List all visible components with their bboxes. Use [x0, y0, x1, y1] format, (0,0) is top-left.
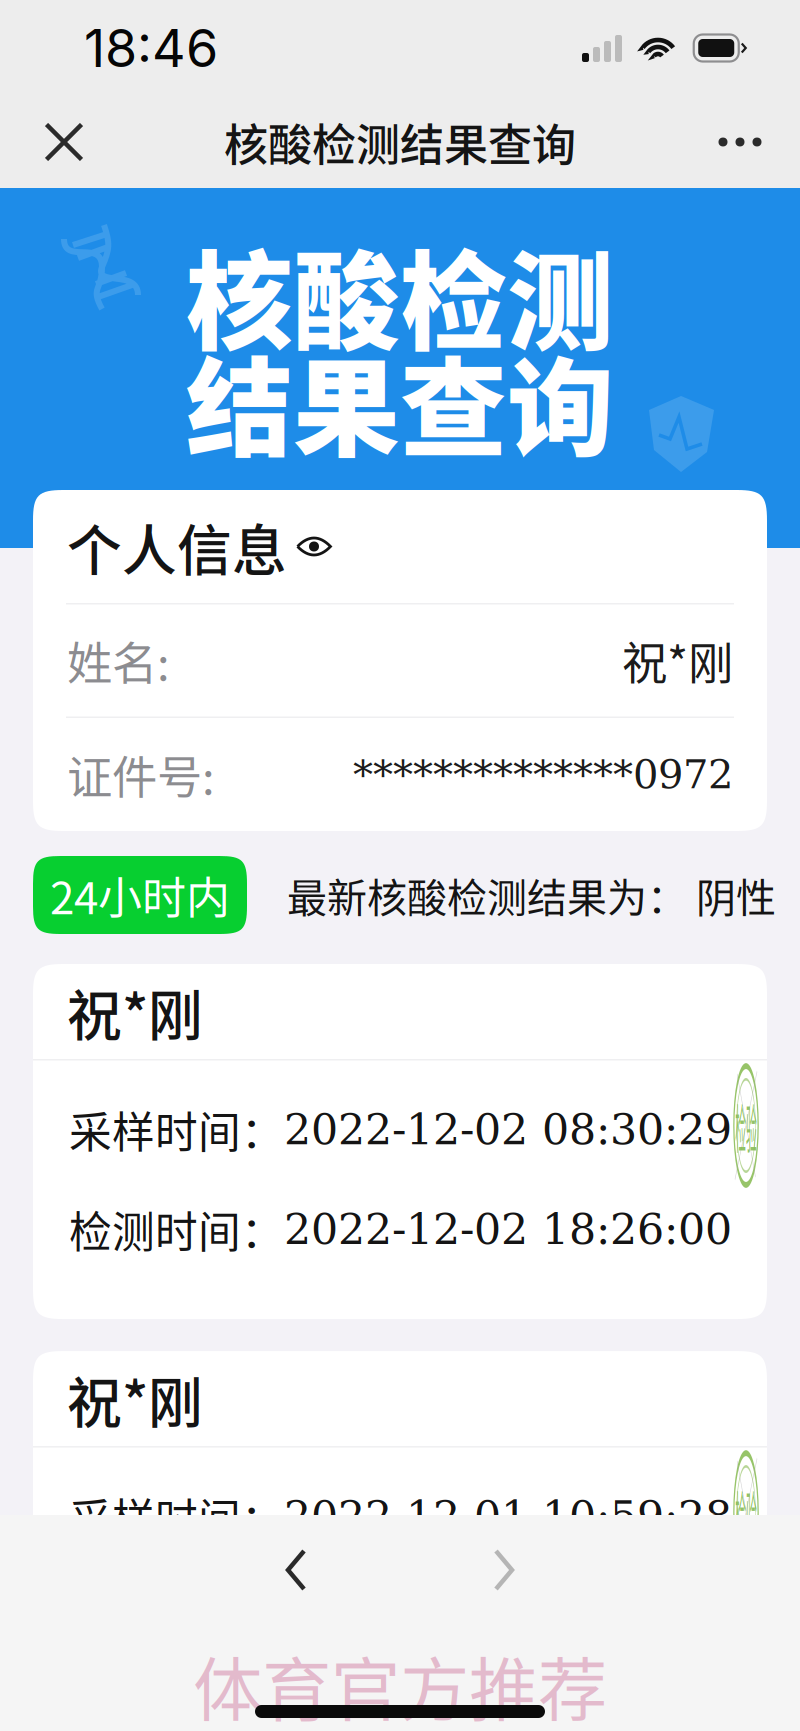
staticText: 最新核酸检测结果为： 阴性: [287, 866, 776, 924]
staticText: 祝*刚: [622, 628, 733, 693]
staticText: 祝*刚: [67, 1359, 203, 1438]
staticText: 体育官方推荐: [193, 1635, 607, 1731]
button[interactable]: Close: [26, 102, 102, 182]
button[interactable]: More: [702, 102, 778, 182]
staticText: 采样时间：: [69, 1486, 284, 1547]
staticText: 结果查询: [186, 323, 614, 478]
staticText: 个人信息: [67, 507, 287, 586]
staticText: 采样时间：: [69, 1098, 284, 1160]
staticText: 2022-12-01 10:59:28: [284, 1492, 732, 1541]
staticText: 检验: [706, 1484, 786, 1541]
staticText: 24小时内: [50, 863, 230, 927]
staticText: 证件号:: [67, 742, 215, 807]
staticText: 祝*刚: [67, 972, 203, 1051]
staticText: 18:46: [84, 16, 218, 79]
staticText: **************0972: [353, 751, 733, 798]
staticText: 姓名:: [67, 628, 170, 693]
staticText: 检验: [706, 1096, 786, 1154]
staticText: 核酸检测: [186, 217, 614, 371]
staticText: 检测时间：: [69, 1198, 284, 1260]
staticText: 核酸检测结果查询: [224, 110, 576, 174]
staticText: 2022-12-02 18:26:00: [284, 1204, 732, 1254]
staticText: 2022-12-02 08:30:29: [284, 1105, 732, 1154]
button[interactable]: Forward: [459, 1525, 549, 1615]
button[interactable]: Back: [251, 1525, 341, 1615]
